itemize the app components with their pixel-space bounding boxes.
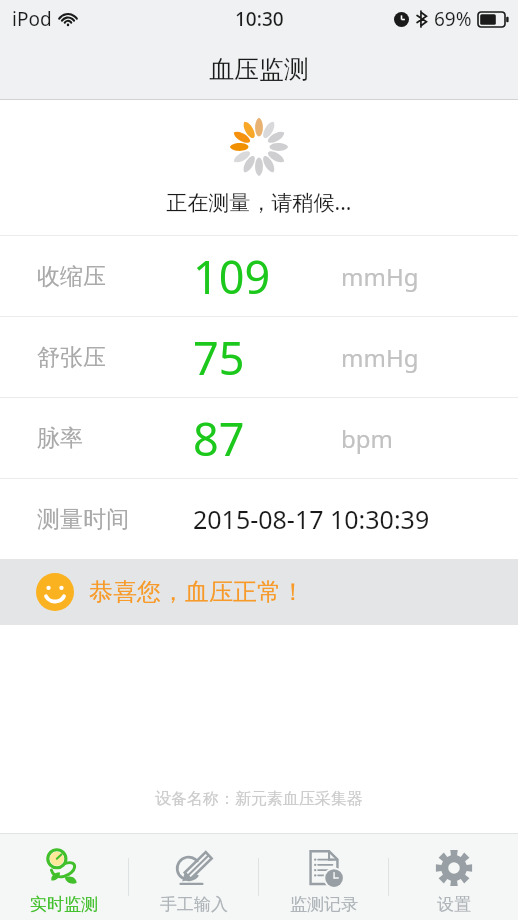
staticText: 收缩压 — [37, 262, 106, 291]
button[interactable]: 监测记录 — [259, 833, 388, 920]
staticText: 测量时间 — [37, 505, 129, 534]
staticText: 血压监测 — [209, 54, 309, 85]
staticText: 正在测量，请稍候... — [0, 188, 518, 217]
staticText: bpm — [341, 422, 393, 455]
staticText: 监测记录 — [290, 894, 358, 915]
button[interactable]: 测量时间 — [0, 479, 518, 559]
button[interactable]: 舒张压 — [0, 317, 518, 397]
staticText: 脉率 — [37, 424, 83, 453]
other: 设置 — [433, 847, 475, 889]
staticText: 10:30 — [235, 6, 284, 32]
staticText: 87 — [193, 408, 245, 469]
other: 实时监测 — [43, 847, 85, 889]
button[interactable]: 脉率 — [0, 398, 518, 478]
staticText: 恭喜您，血压正常！ — [89, 577, 305, 607]
other: 监测记录 — [303, 847, 345, 889]
button[interactable]: 恭喜您，血压正常！ — [36, 559, 518, 625]
staticText: 设备名称：新元素血压采集器 — [0, 789, 518, 809]
staticText: 舒张压 — [37, 343, 106, 372]
staticText: iPod — [12, 6, 52, 32]
button[interactable]: 设置 — [389, 833, 518, 920]
staticText: 2015-08-17 10:30:39 — [193, 502, 430, 536]
staticText: mmHg — [341, 341, 419, 374]
staticText: mmHg — [341, 260, 419, 293]
staticText: 109 — [193, 246, 271, 307]
button[interactable]: 实时监测 — [0, 833, 128, 920]
other: 手工输入 — [173, 847, 215, 889]
staticText: 设置 — [437, 894, 471, 915]
staticText: 实时监测 — [30, 894, 98, 915]
staticText: 75 — [193, 327, 245, 388]
staticText: 69% — [434, 6, 472, 32]
staticText: 手工输入 — [160, 894, 228, 915]
button[interactable]: 手工输入 — [129, 833, 258, 920]
button[interactable]: 收缩压 — [0, 236, 518, 316]
